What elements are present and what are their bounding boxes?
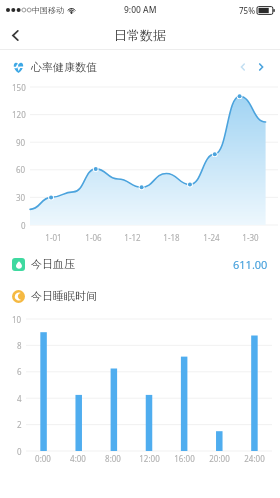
button[interactable]: Next <box>254 60 268 74</box>
staticText: 1-24 <box>203 232 220 243</box>
staticText: 16:00 <box>174 453 195 464</box>
staticText: 1-06 <box>85 232 102 243</box>
button[interactable]: 今日血压 <box>0 253 280 275</box>
staticText: 30 <box>16 192 26 203</box>
staticText: 1-18 <box>163 232 180 243</box>
staticText: 150 <box>12 82 26 93</box>
staticText: 10 <box>12 314 22 325</box>
staticText: 日常数据 <box>114 27 166 43</box>
staticText: 12:00 <box>139 453 160 464</box>
staticText: 2 <box>17 419 22 430</box>
staticText: 8:00 <box>105 453 121 464</box>
staticText: 6 <box>17 366 22 377</box>
staticText: 4 <box>17 393 22 404</box>
staticText: 611.00 <box>233 257 268 272</box>
staticText: 90 <box>16 137 26 148</box>
button[interactable]: Back <box>0 20 30 50</box>
staticText: 今日睡眠时间 <box>31 289 97 303</box>
staticText: 1-01 <box>45 232 62 243</box>
staticText: 0:00 <box>35 453 51 464</box>
staticText: 1-30 <box>242 232 259 243</box>
staticText: 9:00 AM <box>124 4 157 16</box>
staticText: 0 <box>21 220 26 231</box>
staticText: 8 <box>17 340 22 351</box>
staticText: 60 <box>16 164 26 175</box>
staticText: 今日血压 <box>31 257 75 271</box>
button[interactable]: 今日睡眠时间 <box>0 285 280 307</box>
staticText: 75% <box>239 5 255 16</box>
staticText: 120 <box>12 109 26 120</box>
staticText: 1-12 <box>124 232 141 243</box>
staticText: 24:00 <box>244 453 265 464</box>
staticText: 4:00 <box>70 453 86 464</box>
button[interactable]: Previous <box>236 60 250 74</box>
staticText: 0 <box>17 446 22 457</box>
staticText: 20:00 <box>209 453 230 464</box>
staticText: 中国移动 <box>32 5 64 15</box>
staticText: 心率健康数值 <box>31 60 97 74</box>
